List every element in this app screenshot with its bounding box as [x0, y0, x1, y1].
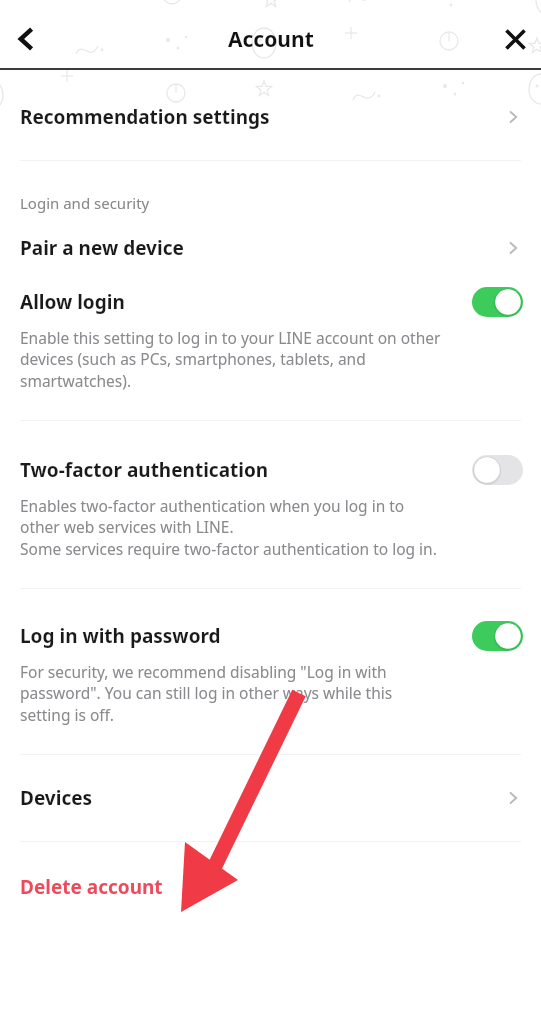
button[interactable]: Recommendation settings: [0, 70, 541, 160]
staticText: Delete account: [20, 874, 163, 900]
staticText: Account: [228, 25, 314, 54]
button[interactable]: Toggle on: [472, 621, 523, 651]
staticText: Recommendation settings: [20, 104, 270, 130]
button[interactable]: Two-factor authentication: [0, 421, 541, 588]
staticText: Login and security: [20, 193, 150, 213]
staticText: Devices: [20, 785, 93, 811]
button[interactable]: Devices: [0, 755, 541, 841]
button[interactable]: Delete account: [0, 872, 541, 918]
button[interactable]: Allow login: [0, 287, 541, 420]
staticText: For security, we recommend disabling "Lo…: [20, 661, 393, 726]
staticText: Pair a new device: [20, 235, 184, 261]
button[interactable]: Log in with password: [0, 589, 541, 754]
staticText: Two-factor authentication: [20, 457, 269, 483]
button[interactable]: Pair a new device: [0, 235, 541, 287]
button[interactable]: Toggle off: [472, 455, 523, 485]
staticText: Allow login: [20, 289, 125, 315]
staticText: Log in with password: [20, 623, 221, 649]
button[interactable]: Close: [489, 13, 541, 65]
staticText: Enable this setting to log in to your LI…: [20, 327, 441, 392]
button[interactable]: Back: [0, 13, 52, 65]
button[interactable]: Toggle on: [472, 287, 523, 317]
staticText: Enables two-factor authentication when y…: [20, 495, 437, 560]
